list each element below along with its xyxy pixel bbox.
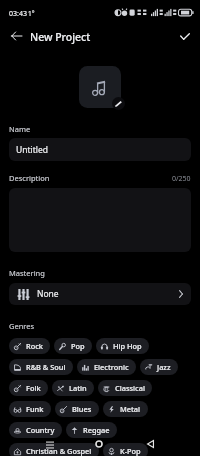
button[interactable]: Home xyxy=(89,436,109,452)
staticText: K-Pop xyxy=(120,446,141,456)
button[interactable]: Save project xyxy=(173,24,197,48)
button[interactable]: R&B & Soul xyxy=(9,359,73,375)
button[interactable]: Folk xyxy=(9,380,48,396)
staticText: Name xyxy=(9,124,31,134)
staticText: 03:43 xyxy=(9,9,27,19)
staticText: Folk xyxy=(26,383,41,393)
button[interactable]: K-Pop xyxy=(103,443,148,456)
button[interactable]: Back xyxy=(4,24,28,48)
button[interactable]: Hip Hop xyxy=(96,338,149,354)
button[interactable]: Untitled xyxy=(9,138,191,161)
staticText: Funk xyxy=(26,404,44,414)
button[interactable]: Christian & Gospel xyxy=(9,443,99,456)
staticText: Electronic xyxy=(94,362,129,372)
button[interactable]: Project artwork xyxy=(79,66,121,108)
staticText: Country xyxy=(26,425,55,435)
button[interactable]: Country xyxy=(9,422,62,438)
button[interactable]: Edit artwork xyxy=(112,97,125,110)
staticText: Untitled xyxy=(16,144,49,156)
button[interactable]: Pop xyxy=(54,338,92,354)
staticText: Hip Hop xyxy=(113,341,142,351)
staticText: Pop xyxy=(71,341,85,351)
staticText: Genres xyxy=(9,321,35,331)
staticText: Description xyxy=(9,173,50,183)
staticText: Blues xyxy=(72,404,92,414)
staticText: Classical xyxy=(115,383,145,393)
button[interactable]: Funk xyxy=(9,401,51,417)
button[interactable]: Reggae xyxy=(66,422,117,438)
button[interactable]: Jazz xyxy=(140,359,178,375)
button[interactable]: Classical xyxy=(98,380,152,396)
button[interactable]: Latin xyxy=(52,380,94,396)
button[interactable]: Rock xyxy=(9,338,50,354)
staticText: 0/250 xyxy=(172,174,191,184)
staticText: New Project xyxy=(30,30,91,44)
staticText: Latin xyxy=(69,383,87,393)
staticText: 1° xyxy=(28,9,35,18)
staticText: Christian & Gospel xyxy=(26,446,92,456)
staticText: Mastering xyxy=(9,268,45,278)
button[interactable]: Electronic xyxy=(77,359,136,375)
staticText: Metal xyxy=(120,404,141,414)
button[interactable]: Recent apps xyxy=(40,436,60,452)
staticText: Jazz xyxy=(157,362,171,372)
staticText: R&B & Soul xyxy=(26,362,66,372)
button[interactable]: Metal xyxy=(103,401,148,417)
button[interactable]: Blues xyxy=(55,401,99,417)
button[interactable]: Back xyxy=(140,436,160,452)
staticText: Reggae xyxy=(83,425,110,435)
staticText: None xyxy=(37,288,59,300)
button[interactable]: None xyxy=(9,283,191,305)
staticText: Rock xyxy=(26,341,43,351)
